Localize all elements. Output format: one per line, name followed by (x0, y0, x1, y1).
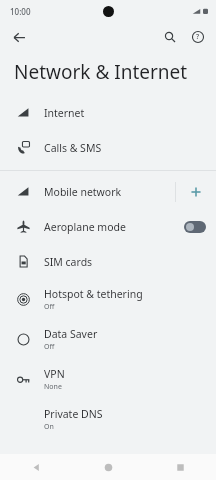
button[interactable]: SIM cards (0, 244, 216, 279)
button[interactable]: Add network (176, 174, 216, 209)
button[interactable]: VPN (0, 359, 216, 399)
button[interactable]: Data Saver (0, 319, 216, 359)
button[interactable]: Back (0, 454, 72, 480)
button[interactable]: Calls & SMS (0, 130, 216, 165)
button[interactable]: Help (185, 24, 211, 50)
button[interactable]: Mobile network (0, 174, 175, 209)
button[interactable]: Back (6, 24, 32, 50)
button[interactable]: Hotspot & tethering (0, 279, 216, 319)
staticText: 10:00 (10, 6, 31, 17)
staticText: ? (196, 32, 200, 42)
staticText: Network & Internet (14, 59, 188, 85)
staticText: Data Saver (44, 327, 98, 341)
staticText: Off (44, 342, 55, 352)
staticText: Aeroplane mode (44, 220, 126, 234)
staticText: On (44, 422, 54, 432)
button[interactable]: Aeroplane mode (184, 221, 206, 233)
button[interactable]: Aeroplane mode (0, 209, 216, 244)
button[interactable]: Search (157, 24, 183, 50)
staticText: SIM cards (44, 255, 93, 269)
staticText: Private DNS (44, 407, 103, 421)
staticText: None (44, 382, 62, 392)
staticText: Off (44, 302, 55, 312)
button[interactable]: Home (72, 454, 144, 480)
staticText: VPN (44, 367, 65, 381)
staticText: Hotspot & tethering (44, 287, 143, 301)
button[interactable]: Internet (0, 95, 216, 130)
button[interactable]: Private DNS (0, 399, 216, 439)
button[interactable]: Recent apps (144, 454, 216, 480)
staticText: Mobile network (44, 185, 122, 199)
staticText: Calls & SMS (44, 141, 102, 155)
staticText: Internet (44, 106, 85, 120)
